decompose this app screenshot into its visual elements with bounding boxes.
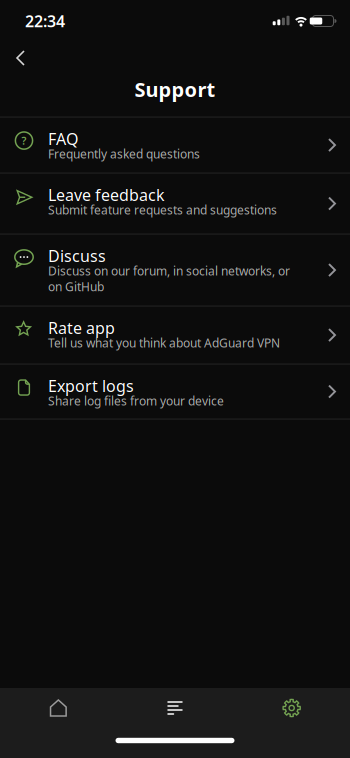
staticText: ? [21,133,26,148]
button[interactable]: Log [117,700,233,716]
button[interactable]: Back [0,42,25,66]
staticText: Export logs [48,375,134,396]
staticText: Share log files from your device [48,393,224,409]
staticText: Leave feedback [48,184,165,205]
staticText: FAQ [48,128,78,149]
staticText: Support [134,76,215,103]
staticText: 22:34 [25,10,65,32]
staticText: Discuss on our forum, in social networks… [48,263,290,295]
button[interactable]: ? [0,118,350,173]
staticText: Submit feature requests and suggestions [48,202,277,218]
button[interactable]: Rate app [0,307,350,364]
button[interactable]: Leave feedback [0,174,350,234]
button[interactable]: Discuss [0,235,350,306]
button[interactable]: Home [0,698,117,718]
button[interactable]: Export logs [0,365,350,419]
staticText: Rate app [48,317,115,338]
staticText: Tell us what you think about AdGuard VPN [48,335,280,351]
staticText: Discuss [48,245,106,266]
button[interactable]: Settings [233,698,350,718]
staticText: Frequently asked questions [48,146,200,162]
